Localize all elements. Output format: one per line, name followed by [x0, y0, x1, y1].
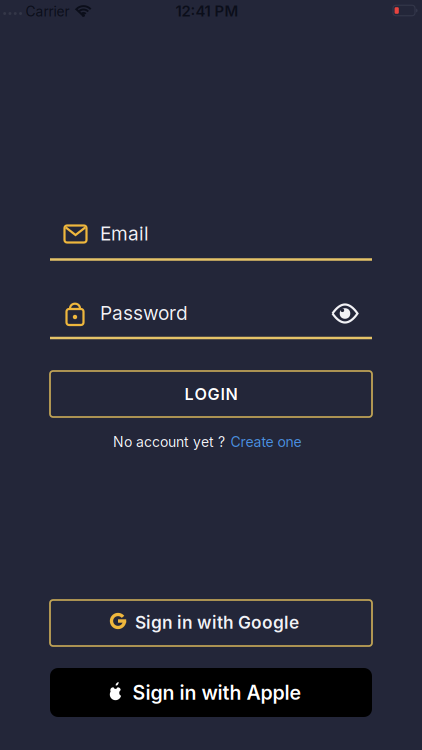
button[interactable]: Create one [230, 433, 301, 450]
button[interactable]: Sign in with Google [50, 600, 372, 646]
staticText: Email [100, 222, 149, 245]
button[interactable]: Email [50, 222, 372, 270]
button[interactable]: Password [50, 301, 372, 349]
staticText: Carrier [25, 3, 69, 20]
staticText: Sign in with Apple [132, 681, 301, 704]
button[interactable] [332, 304, 358, 323]
staticText: Sign in with Google [135, 612, 299, 633]
staticText: 12:41 PM [175, 2, 238, 20]
staticText: Password [100, 301, 188, 324]
button[interactable]: Sign in with Apple [50, 668, 372, 717]
staticText: Create one [230, 433, 301, 450]
button[interactable]: LOGIN [50, 371, 372, 417]
staticText: No account yet ? [113, 433, 225, 450]
staticText: LOGIN [184, 384, 237, 404]
